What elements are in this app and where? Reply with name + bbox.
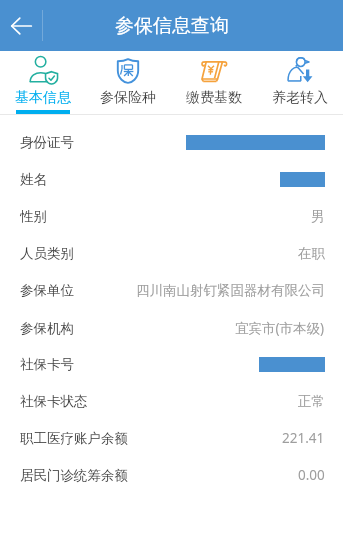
button[interactable]: 社保卡状态 — [0, 383, 343, 420]
staticText: 社保卡号 — [20, 356, 74, 373]
staticText: 四川南山射钉紧固器材有限公司 — [136, 282, 325, 299]
button[interactable]: 基本信息 — [0, 51, 85, 114]
button[interactable]: 身份证号 — [0, 124, 343, 161]
staticText: 缴费基数 — [186, 89, 242, 107]
staticText: 身份证号 — [20, 134, 74, 151]
staticText: 人员类别 — [20, 245, 74, 262]
staticText: 养老转入 — [272, 89, 328, 107]
button[interactable]: Back — [0, 0, 42, 51]
staticText: 正常 — [298, 393, 325, 410]
staticText: 性别 — [20, 208, 47, 225]
staticText: 参保单位 — [20, 282, 74, 299]
staticText: 男 — [311, 208, 325, 225]
staticText: 居民门诊统筹余额 — [20, 467, 128, 484]
button[interactable]: 社保卡号 — [0, 346, 343, 383]
staticText: 参保信息查询 — [115, 14, 229, 38]
staticText: 在职 — [298, 245, 325, 262]
staticText: 姓名 — [20, 171, 47, 188]
button[interactable]: 人员类别 — [0, 235, 343, 272]
button[interactable]: 参保机构 — [0, 309, 343, 346]
button[interactable]: 参保险种 — [85, 51, 171, 114]
staticText: 221.41 — [282, 429, 325, 447]
button[interactable]: 姓名 — [0, 161, 343, 198]
staticText: 职工医疗账户余额 — [20, 430, 128, 447]
button[interactable]: 性别 — [0, 198, 343, 235]
staticText: 0.00 — [298, 466, 325, 484]
staticText: 社保卡状态 — [20, 393, 88, 410]
staticText: 参保险种 — [100, 89, 156, 107]
button[interactable]: 参保单位 — [0, 272, 343, 309]
staticText: 参保机构 — [20, 320, 74, 337]
button[interactable]: 居民门诊统筹余额 — [0, 456, 343, 493]
button[interactable]: 养老转入 — [257, 51, 343, 114]
staticText: 基本信息 — [15, 89, 71, 107]
button[interactable]: 职工医疗账户余额 — [0, 419, 343, 456]
staticText: 宜宾市(市本级) — [235, 319, 325, 337]
button[interactable]: 缴费基数 — [171, 51, 257, 114]
